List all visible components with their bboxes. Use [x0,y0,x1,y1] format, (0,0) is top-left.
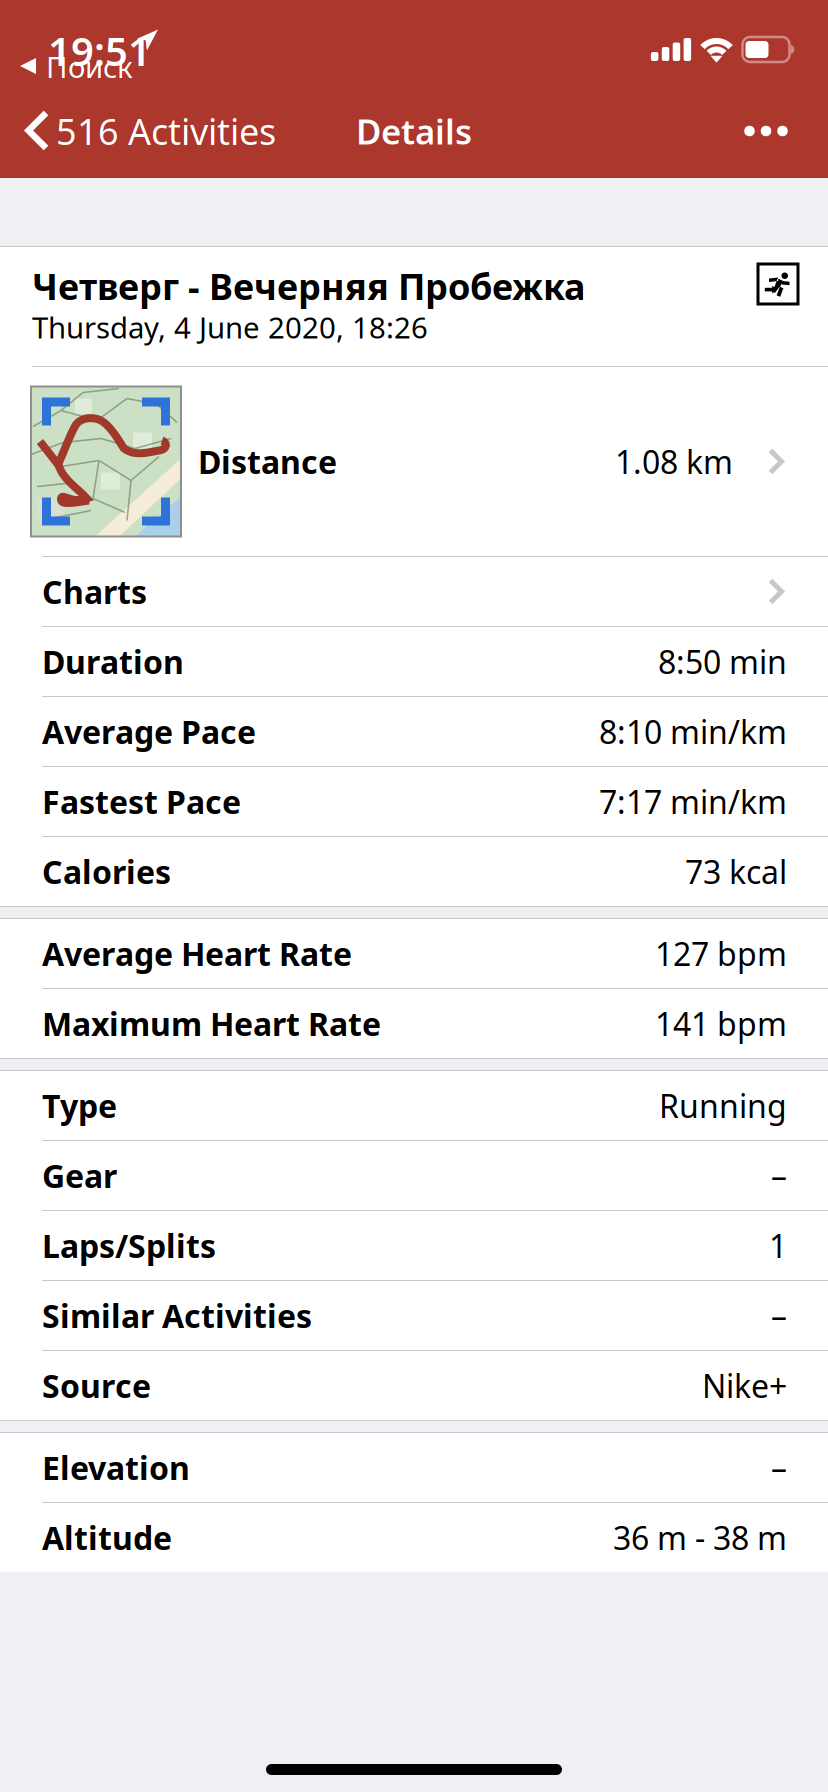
button[interactable]: Gear [0,1141,828,1211]
button[interactable]: 516 Activities [0,101,288,161]
button[interactable]: Charts [0,557,828,627]
staticText: Running [659,1084,787,1127]
button[interactable]: Type [0,1071,828,1141]
button[interactable]: Similar Activities [0,1281,828,1351]
button[interactable]: Calories [0,837,828,906]
staticText: Charts [42,570,147,613]
button[interactable]: More options [718,107,828,154]
button[interactable]: Average Heart Rate [0,919,828,989]
staticText: Thursday, 4 June 2020, 18:26 [32,307,428,346]
staticText: 516 Activities [56,107,276,155]
staticText: Average Heart Rate [42,932,352,975]
staticText: 36 m - 38 m [613,1516,787,1559]
staticText: Gear [42,1154,117,1197]
staticText: Similar Activities [42,1294,312,1337]
button[interactable]: Duration [0,627,828,697]
staticText: Source [42,1364,151,1407]
staticText: Type [42,1084,117,1127]
button[interactable]: Distance [0,367,828,556]
staticText: 141 bpm [655,1002,787,1045]
button[interactable]: Average Pace [0,697,828,767]
staticText: Поиск [46,47,133,86]
staticText: 1 [769,1224,787,1267]
staticText: 7:17 min/km [599,780,787,823]
button[interactable]: Fastest Pace [0,767,828,837]
button[interactable]: Elevation [0,1433,828,1503]
button[interactable]: Altitude [0,1503,828,1572]
staticText: Calories [42,850,171,893]
staticText: Duration [42,640,184,683]
button[interactable]: Maximum Heart Rate [0,989,828,1058]
staticText: Maximum Heart Rate [42,1002,381,1045]
staticText: – [771,1294,787,1337]
staticText: – [771,1446,787,1489]
staticText: Четверг - Вечерняя Пробежка [32,262,585,310]
button[interactable]: Laps/Splits [0,1211,828,1281]
staticText: Average Pace [42,710,256,753]
staticText: 1.08 km [615,440,733,483]
staticText: 19:51 [48,24,151,77]
staticText: Elevation [42,1446,190,1489]
staticText: Altitude [42,1516,172,1559]
button[interactable]: Source [0,1351,828,1420]
staticText: Details [356,108,472,154]
staticText: 73 kcal [685,850,787,893]
staticText: 8:50 min [658,640,787,683]
staticText: 127 bpm [655,932,787,975]
staticText: Laps/Splits [42,1224,216,1267]
staticText: Nike+ [702,1364,787,1407]
staticText: – [771,1154,787,1197]
staticText: 8:10 min/km [599,710,787,753]
staticText: Fastest Pace [42,780,241,823]
staticText: Distance [198,440,337,483]
